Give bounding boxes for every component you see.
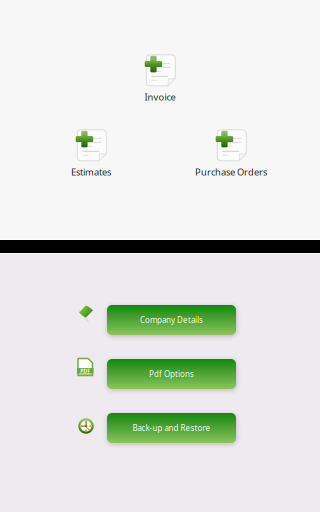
staticText: Back-up and Restore: [132, 423, 210, 433]
button[interactable]: PDF: [78, 359, 243, 389]
staticText: Pdf Options: [149, 369, 194, 379]
staticText: Company Details: [140, 315, 203, 325]
button[interactable]: Invoice: [100, 56, 220, 102]
staticText: Estimates: [71, 166, 111, 178]
staticText: PDF: [80, 367, 90, 374]
staticText: Invoice: [144, 91, 175, 103]
button[interactable]: Back-up and Restore: [78, 413, 243, 443]
button[interactable]: Estimates: [31, 131, 151, 177]
button[interactable]: Company Details: [78, 305, 243, 335]
button[interactable]: Purchase Orders: [171, 131, 291, 177]
staticText: Purchase Orders: [195, 166, 267, 178]
